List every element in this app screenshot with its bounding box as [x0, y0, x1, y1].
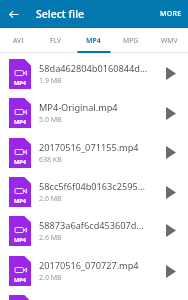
staticText: MPG [123, 36, 139, 45]
staticText: MP4 [14, 276, 26, 284]
staticText: 58da462804b0160844d5a60fc3... [39, 62, 148, 75]
button[interactable]: MORE [151, 0, 188, 28]
staticText: MP4-Original.mp4 [39, 101, 118, 114]
button[interactable]: Play [154, 211, 188, 250]
staticText: 5.0 MB [39, 115, 62, 125]
staticText: MP4 [14, 118, 26, 126]
staticText: 2.6 MB [39, 194, 62, 204]
button[interactable]: MP4 [0, 290, 188, 300]
button[interactable]: WMV [150, 28, 188, 53]
button[interactable]: FLV [37, 28, 74, 53]
staticText: 638 KB [39, 155, 62, 165]
button[interactable]: MP4 [0, 251, 188, 291]
staticText: 2.0 MB [39, 273, 62, 283]
staticText: Select file [36, 7, 85, 21]
button[interactable]: MP4 [0, 93, 188, 133]
staticText: FLV [50, 36, 62, 45]
button[interactable]: MP4 [0, 133, 188, 172]
staticText: MP4 [14, 79, 26, 87]
button[interactable]: Back [0, 0, 26, 28]
staticText: MORE [160, 9, 182, 19]
staticText: 20170516_071155.mp4 [39, 141, 139, 154]
staticText: 20170516_070727.mp4 [39, 259, 139, 272]
staticText: MP4 [86, 36, 101, 45]
staticText: MP4 [14, 197, 26, 205]
button[interactable]: Play [154, 54, 188, 93]
button[interactable]: Play [154, 133, 188, 172]
staticText: WMV [161, 36, 178, 45]
button[interactable]: Play [154, 93, 188, 133]
button[interactable]: MPG [112, 28, 150, 53]
staticText: 1.9 MB [39, 76, 62, 86]
staticText: MP4 [14, 158, 26, 166]
button[interactable]: MP4 [0, 172, 188, 212]
button[interactable]: MP4 [74, 28, 112, 53]
staticText: 2.6 MB [39, 233, 62, 243]
staticText: 58873a6af6cd453607daa1b3c... [39, 219, 148, 232]
button[interactable]: Play [154, 172, 188, 212]
staticText: MP4 [14, 236, 26, 244]
button[interactable]: MP4 [0, 54, 188, 93]
button[interactable]: MP4 [0, 211, 188, 250]
button[interactable]: Play [154, 251, 188, 291]
staticText: AVI [13, 36, 24, 45]
button[interactable]: AVI [0, 28, 37, 53]
staticText: 58cc5f6f04b0163c2595f8c1d0... [39, 180, 148, 193]
